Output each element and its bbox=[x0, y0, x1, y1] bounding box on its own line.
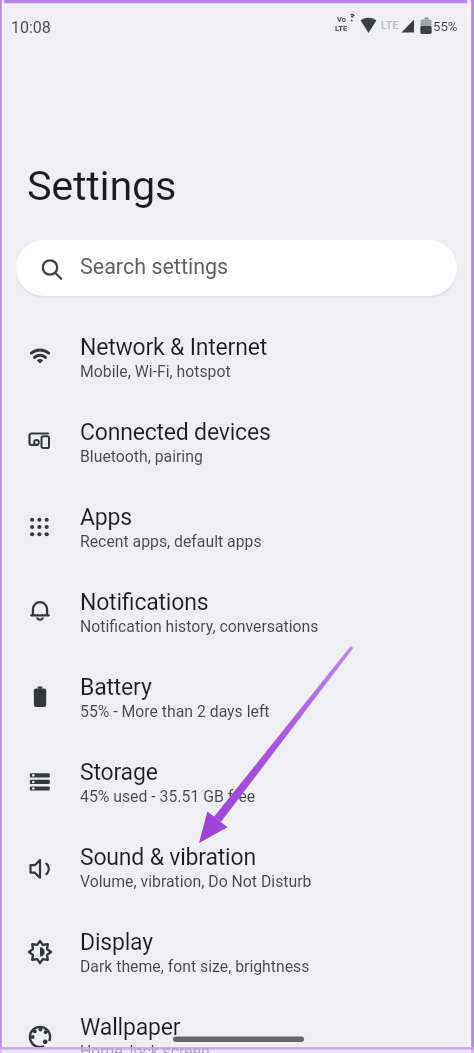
button[interactable]: Connected devices bbox=[0, 400, 474, 485]
staticText: Apps bbox=[80, 504, 132, 531]
staticText: Bluetooth, pairing bbox=[80, 447, 203, 466]
staticText: Wallpaper bbox=[80, 1014, 181, 1041]
staticText: Storage bbox=[80, 759, 158, 786]
staticText: Volume, vibration, Do Not Disturb bbox=[80, 872, 312, 891]
staticText: Connected devices bbox=[80, 419, 271, 446]
staticText: Settings bbox=[27, 161, 177, 210]
staticText: Battery bbox=[80, 674, 152, 701]
button[interactable]: Wallpaper bbox=[0, 995, 474, 1053]
staticText: Display bbox=[80, 929, 153, 956]
staticText: Search settings bbox=[80, 254, 229, 279]
button[interactable]: Display bbox=[0, 910, 474, 995]
staticText: LTE bbox=[335, 24, 348, 33]
staticText: Home, lock screen bbox=[80, 1042, 210, 1053]
button[interactable]: Storage bbox=[0, 740, 474, 825]
staticText: LTE bbox=[381, 19, 399, 32]
staticText: Dark theme, font size, brightness bbox=[80, 957, 310, 976]
staticText: Mobile, Wi-Fi, hotspot bbox=[80, 362, 231, 381]
button[interactable]: Apps bbox=[0, 485, 474, 570]
staticText: Notification history, conversations bbox=[80, 617, 319, 636]
staticText: Network & Internet bbox=[80, 334, 267, 361]
staticText: Recent apps, default apps bbox=[80, 532, 262, 551]
button[interactable]: Notifications bbox=[0, 570, 474, 655]
button[interactable]: Battery bbox=[0, 655, 474, 740]
staticText: 10:08 bbox=[11, 18, 51, 37]
staticText: Vo bbox=[337, 15, 346, 24]
staticText: 55% - More than 2 days left bbox=[80, 702, 270, 721]
button[interactable]: Sound & vibration bbox=[0, 825, 474, 910]
staticText: 45% used - 35.51 GB free bbox=[80, 787, 256, 806]
staticText: Notifications bbox=[80, 589, 209, 616]
staticText: 55% bbox=[433, 19, 458, 34]
button[interactable]: Network & Internet bbox=[0, 315, 474, 400]
button[interactable]: Search settings bbox=[16, 240, 457, 296]
staticText: Sound & vibration bbox=[80, 844, 256, 871]
